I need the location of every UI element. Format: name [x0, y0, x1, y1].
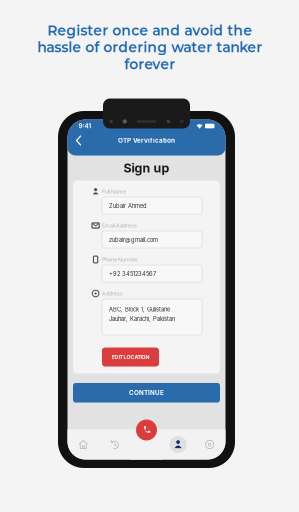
button[interactable]: History [99, 429, 131, 459]
staticText: Full Name [102, 188, 126, 195]
button[interactable]: Settings [194, 429, 225, 459]
staticText: Email Address [102, 222, 137, 229]
staticText: OTP Vervification [118, 137, 175, 144]
button[interactable]: EDIT LOCATION [102, 347, 159, 366]
staticText: EDIT LOCATION [111, 354, 149, 360]
button[interactable]: Profile [162, 429, 194, 459]
staticText: Jauhar, Karachi, Pakistan [109, 315, 175, 322]
staticText: Zubair Ahmed [109, 202, 147, 209]
staticText: CONTINUE [129, 389, 164, 397]
button[interactable]: Home [67, 429, 99, 459]
staticText: Address [102, 290, 123, 297]
staticText: Sign up [123, 160, 169, 175]
staticText: 9:41 [78, 122, 91, 130]
button[interactable]: Call [136, 419, 157, 440]
button[interactable]: Back [67, 133, 87, 148]
staticText: Register once and avoid the hassle of or… [37, 22, 262, 73]
staticText: zubair@gmail.com [109, 236, 158, 243]
button[interactable]: CONTINUE [73, 383, 220, 402]
staticText: +92 3451234567 [109, 270, 156, 277]
staticText: ABC, Block 1, Gulistane [109, 306, 170, 313]
staticText: Phone Number [102, 256, 138, 263]
